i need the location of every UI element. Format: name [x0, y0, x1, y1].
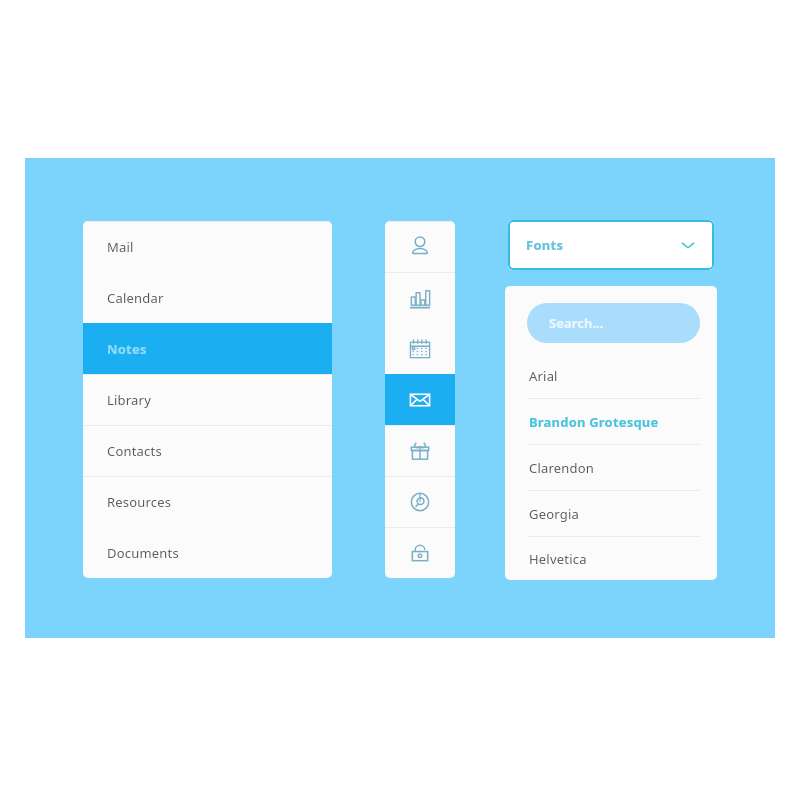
button[interactable]: Notes	[83, 323, 332, 374]
staticText: Arial	[529, 367, 558, 385]
button[interactable]: Security	[385, 527, 455, 578]
button[interactable]: Search...	[527, 303, 700, 343]
button[interactable]: Fonts	[508, 220, 714, 270]
staticText: Resources	[107, 493, 172, 511]
button[interactable]: Brandon Grotesque	[505, 399, 717, 445]
staticText: Georgia	[529, 505, 579, 523]
button[interactable]: Gifts	[385, 425, 455, 476]
button[interactable]: Arial	[505, 353, 717, 399]
button[interactable]: Library	[83, 374, 332, 425]
staticText: Notes	[107, 340, 147, 358]
staticText: Helvetica	[529, 550, 587, 568]
staticText: Contacts	[107, 442, 162, 460]
button[interactable]: Profile	[385, 221, 455, 272]
staticText: Brandon Grotesque	[529, 413, 659, 431]
staticText: Calendar	[107, 289, 164, 307]
button[interactable]: Contacts	[83, 425, 332, 476]
staticText: Documents	[107, 544, 179, 562]
button[interactable]: Georgia	[505, 491, 717, 537]
staticText: Fonts	[526, 236, 564, 254]
button[interactable]: Helvetica	[505, 537, 717, 580]
button[interactable]: Mail	[385, 374, 455, 425]
staticText: Library	[107, 391, 151, 409]
button[interactable]: Calendar	[385, 323, 455, 374]
button[interactable]: Documents	[83, 527, 332, 578]
button[interactable]: Clarendon	[505, 445, 717, 491]
staticText: Search...	[549, 314, 604, 332]
button[interactable]: Resources	[83, 476, 332, 527]
staticText: Clarendon	[529, 459, 595, 477]
button[interactable]: Search	[385, 476, 455, 527]
button[interactable]: Calendar	[83, 272, 332, 323]
staticText: Mail	[107, 238, 134, 256]
button[interactable]: Statistics	[385, 272, 455, 323]
button[interactable]: Mail	[83, 221, 332, 272]
